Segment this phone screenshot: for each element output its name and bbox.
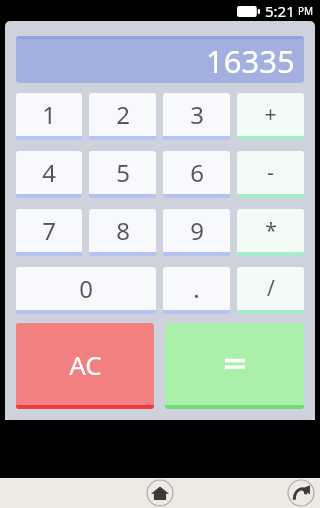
staticText: 3 (190, 98, 204, 131)
staticText: 1 (42, 98, 56, 131)
staticText: + (264, 100, 277, 129)
button[interactable]: * (237, 209, 304, 256)
staticText: 4 (42, 156, 56, 189)
staticText: 9 (190, 214, 204, 247)
button[interactable]: 1 (16, 93, 82, 140)
staticText: AC (69, 347, 102, 382)
staticText: 5:21 (265, 1, 295, 21)
staticText: 2 (116, 98, 130, 131)
staticText: 16335 (206, 40, 295, 82)
staticText: 8 (116, 214, 130, 247)
staticText: 5 (116, 156, 130, 189)
button[interactable]: / (237, 267, 304, 314)
button[interactable]: Home (145, 478, 175, 508)
staticText: 7 (42, 214, 56, 247)
button[interactable]: 0 (16, 267, 156, 314)
button[interactable]: 6 (163, 151, 230, 198)
staticText: / (267, 274, 275, 303)
staticText: 6 (190, 156, 204, 189)
button[interactable] (165, 323, 304, 409)
button[interactable]: AC (16, 323, 154, 409)
button[interactable]: 5 (89, 151, 156, 198)
staticText: . (193, 272, 200, 305)
button[interactable]: Forward (286, 478, 316, 508)
staticText: PM (298, 4, 314, 18)
button[interactable]: . (163, 267, 230, 314)
button[interactable]: 3 (163, 93, 230, 140)
button[interactable]: - (237, 151, 304, 198)
button[interactable]: + (237, 93, 304, 140)
staticText: - (267, 158, 274, 187)
staticText: * (265, 216, 277, 245)
button[interactable]: 8 (89, 209, 156, 256)
button[interactable]: 4 (16, 151, 82, 198)
button[interactable]: 7 (16, 209, 82, 256)
button[interactable]: 2 (89, 93, 156, 140)
staticText: 0 (79, 272, 93, 305)
button[interactable]: 9 (163, 209, 230, 256)
